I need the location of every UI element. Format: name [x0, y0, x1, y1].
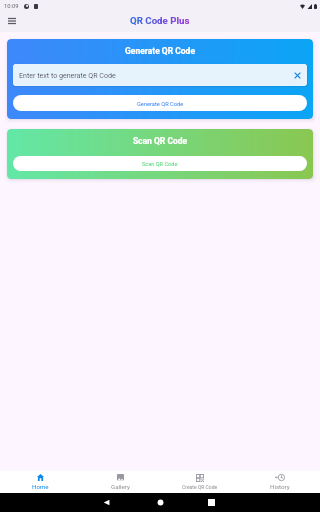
- button[interactable]: Back: [96, 493, 116, 512]
- staticText: Scan QR Code: [142, 161, 178, 168]
- button[interactable]: Recent apps: [201, 493, 221, 512]
- staticText: Generate QR Code: [137, 101, 184, 108]
- button[interactable]: Enter text to generate QR Code: [13, 64, 307, 86]
- staticText: QR Code Plus: [130, 15, 190, 26]
- staticText: Generate QR Code: [7, 46, 313, 56]
- button[interactable]: Menu: [4, 13, 20, 29]
- button[interactable]: History: [240, 471, 320, 493]
- staticText: History: [270, 483, 290, 490]
- button[interactable]: Clear text: [290, 68, 304, 82]
- button[interactable]: Create QR Code: [160, 471, 240, 493]
- button[interactable]: Home: [150, 493, 170, 512]
- staticText: Scan QR Code: [7, 136, 313, 146]
- button[interactable]: Home: [0, 471, 80, 493]
- staticText: 10:09: [4, 3, 19, 10]
- button[interactable]: Scan QR Code: [13, 156, 307, 171]
- staticText: Create QR Code: [182, 484, 218, 490]
- staticText: Enter text to generate QR Code: [19, 71, 116, 79]
- button[interactable]: Generate QR Code: [13, 95, 307, 111]
- button[interactable]: Gallery: [80, 471, 160, 493]
- staticText: Home: [32, 483, 49, 490]
- staticText: Gallery: [111, 483, 130, 490]
